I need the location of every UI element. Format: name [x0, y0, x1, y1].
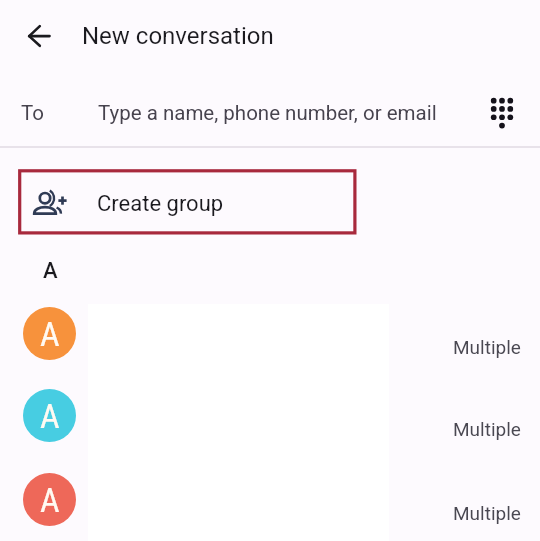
button[interactable]: Create group	[0, 148, 540, 232]
staticText: A	[40, 480, 60, 520]
staticText: Create group	[97, 191, 224, 217]
button[interactable]: A	[0, 293, 540, 375]
button[interactable]: Type a name, phone number, or email	[98, 86, 458, 128]
staticText: Type a name, phone number, or email	[98, 101, 437, 125]
staticText: Multiple	[453, 336, 521, 358]
staticText: A	[40, 314, 60, 354]
staticText: Multiple	[453, 502, 521, 524]
button[interactable]: Back	[15, 12, 62, 59]
button[interactable]: A	[0, 459, 540, 541]
button[interactable]: Dialpad	[478, 87, 526, 135]
staticText: Multiple	[453, 418, 521, 440]
staticText: New conversation	[82, 22, 274, 50]
staticText: A	[40, 396, 60, 436]
button[interactable]: A	[0, 375, 540, 457]
staticText: A	[43, 258, 58, 284]
staticText: To	[21, 101, 44, 125]
